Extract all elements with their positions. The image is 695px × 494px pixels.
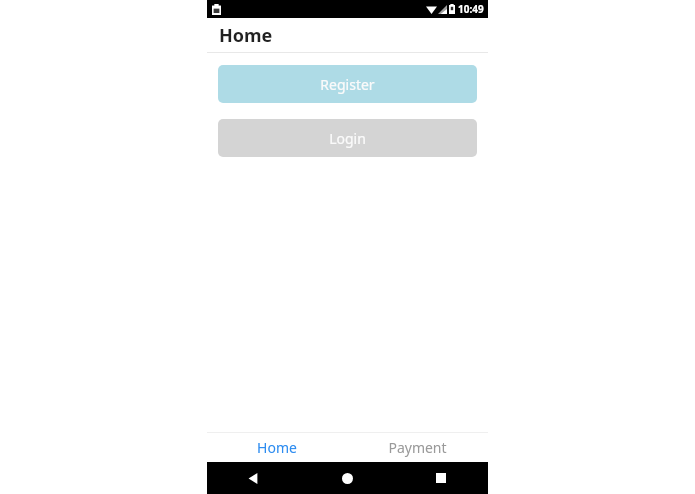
button[interactable]: Home: [207, 433, 347, 462]
staticText: Home: [219, 23, 273, 48]
button[interactable]: Register: [218, 65, 477, 103]
button[interactable]: Payment: [347, 433, 488, 462]
button[interactable]: Home: [300, 462, 394, 494]
staticText: Register: [320, 75, 375, 94]
button[interactable]: Login: [218, 119, 477, 157]
button[interactable]: Back: [207, 462, 300, 494]
staticText: 10:49: [458, 2, 484, 16]
staticText: Home: [257, 438, 297, 457]
button[interactable]: Recent apps: [394, 462, 488, 494]
staticText: Payment: [388, 438, 447, 457]
staticText: Login: [329, 129, 366, 148]
